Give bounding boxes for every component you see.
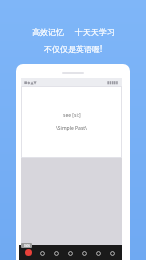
staticText: \Simple Past\ xyxy=(56,125,87,132)
button[interactable]: Location xyxy=(66,249,74,257)
staticText: 0:06 xyxy=(24,244,30,248)
staticText: 不仅仅是英语喔! xyxy=(44,43,103,54)
button[interactable]: Screenshot xyxy=(38,249,46,257)
button[interactable]: 记得 xyxy=(25,249,71,259)
button[interactable]: Settings xyxy=(80,249,88,257)
staticText: ▮▮▮▮▮ xyxy=(107,80,119,85)
staticText: ◼◆▲▼ xyxy=(24,80,37,85)
button[interactable]: 不记得 xyxy=(72,249,119,259)
button[interactable]: Draw xyxy=(94,249,102,257)
staticText: 高效记忆 xyxy=(32,27,64,37)
staticText: see [si:] xyxy=(63,112,81,119)
staticText: 不记得 xyxy=(89,251,103,257)
staticText: 十天天学习 xyxy=(75,27,115,37)
button[interactable]: Record xyxy=(25,249,32,256)
button[interactable]: Volume xyxy=(52,249,60,257)
button[interactable]: Zoom xyxy=(108,249,116,257)
staticText: 记得 xyxy=(44,251,53,257)
